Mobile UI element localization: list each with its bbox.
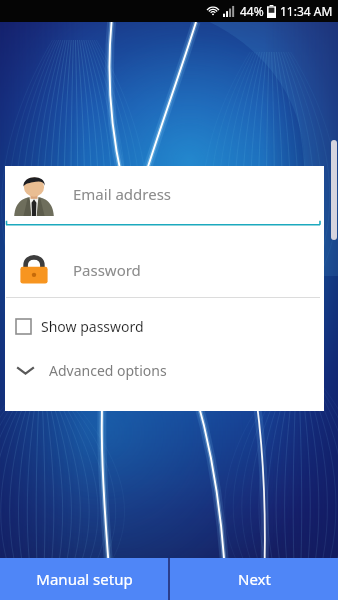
button[interactable]: Next (170, 558, 338, 600)
button[interactable]: Manual setup (0, 558, 168, 600)
staticText: Password (73, 260, 141, 280)
staticText: 44% (240, 3, 264, 19)
button[interactable]: Password (5, 243, 324, 297)
button[interactable]: Email address (5, 166, 324, 222)
staticText: Manual setup (36, 569, 133, 589)
staticText: Show password (41, 317, 144, 336)
button[interactable]: Show password (5, 311, 324, 341)
staticText: Next (238, 569, 271, 589)
staticText: Email address (73, 184, 172, 204)
staticText: 11:34 AM (280, 3, 333, 19)
staticText: Advanced options (49, 361, 167, 380)
button[interactable]: Advanced options (5, 355, 324, 385)
